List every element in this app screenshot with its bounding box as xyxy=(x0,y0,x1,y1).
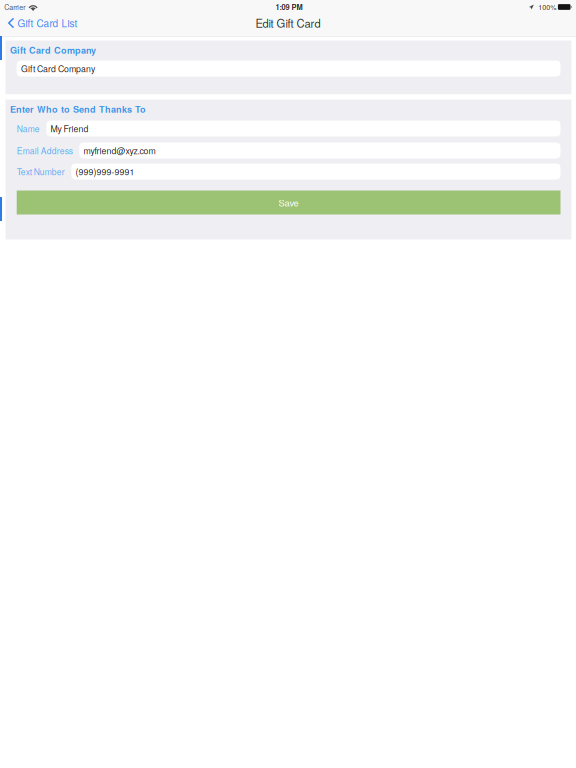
staticText: 100% xyxy=(538,2,556,12)
staticText: Carrier xyxy=(4,2,25,12)
staticText: (999)999-9991 xyxy=(76,165,135,178)
staticText: Gift Card Company xyxy=(10,43,96,56)
staticText: 1:09 PM xyxy=(275,2,302,12)
staticText: Email Address xyxy=(17,144,73,157)
staticText: Edit Gift Card xyxy=(255,15,320,31)
staticText: Save xyxy=(279,196,299,209)
staticText: Gift Card List xyxy=(17,16,77,30)
button[interactable]: Save xyxy=(5,190,560,214)
staticText: Gift Card Company xyxy=(21,62,95,75)
button[interactable]: Gift Card List xyxy=(0,14,85,32)
staticText: Name xyxy=(17,122,40,135)
staticText: Enter Who to Send Thanks To xyxy=(10,102,146,115)
staticText: Text Number xyxy=(17,165,65,178)
staticText: myfriend@xyz.com xyxy=(84,144,156,157)
staticText: My Friend xyxy=(51,122,89,135)
